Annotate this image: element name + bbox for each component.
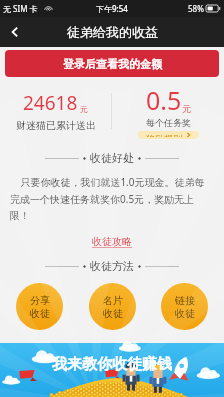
staticText: 24618	[23, 90, 78, 116]
button[interactable]: 奖励规则	[138, 131, 199, 139]
staticText: 收徒	[175, 307, 195, 320]
staticText: 元	[182, 103, 191, 114]
staticText: 58%	[188, 3, 204, 14]
staticText: 下午9:54	[96, 3, 128, 14]
button[interactable]: 链接	[161, 283, 208, 330]
button[interactable]: 收徒攻略	[89, 232, 135, 251]
staticText: 收徒好处	[90, 151, 134, 165]
staticText: 0.5	[146, 83, 182, 117]
staticText: 链接	[175, 294, 195, 307]
staticText: 财迷猫已累计送出	[16, 119, 96, 132]
staticText: 我来教你收徒赚钱	[52, 355, 172, 374]
staticText: 元	[80, 104, 88, 114]
button[interactable]: 我来教你收徒赚钱	[0, 343, 224, 397]
staticText: 收徒	[30, 307, 50, 320]
staticText: 收徒方法	[90, 259, 134, 273]
staticText: 登录后查看我的金额	[63, 57, 162, 71]
staticText: 只要你收徒，我们就送1.0元现金。徒弟每完成一个快速任务就奖你0.5元，奖励无上…	[10, 175, 214, 222]
staticText: 名片	[103, 294, 123, 307]
button[interactable]: 名片	[89, 283, 136, 330]
button[interactable]: 登录后查看我的金额	[5, 50, 219, 77]
staticText: 收徒	[103, 307, 123, 320]
staticText: 徒弟给我的收益	[67, 24, 158, 40]
button[interactable]: 分享	[16, 283, 63, 330]
staticText: 无 SIM 卡	[3, 3, 38, 14]
staticText: 奖励规则	[146, 133, 182, 137]
button[interactable]: 返回	[0, 17, 30, 47]
staticText: 每个任务奖	[146, 117, 191, 128]
staticText: 分享	[30, 294, 50, 307]
